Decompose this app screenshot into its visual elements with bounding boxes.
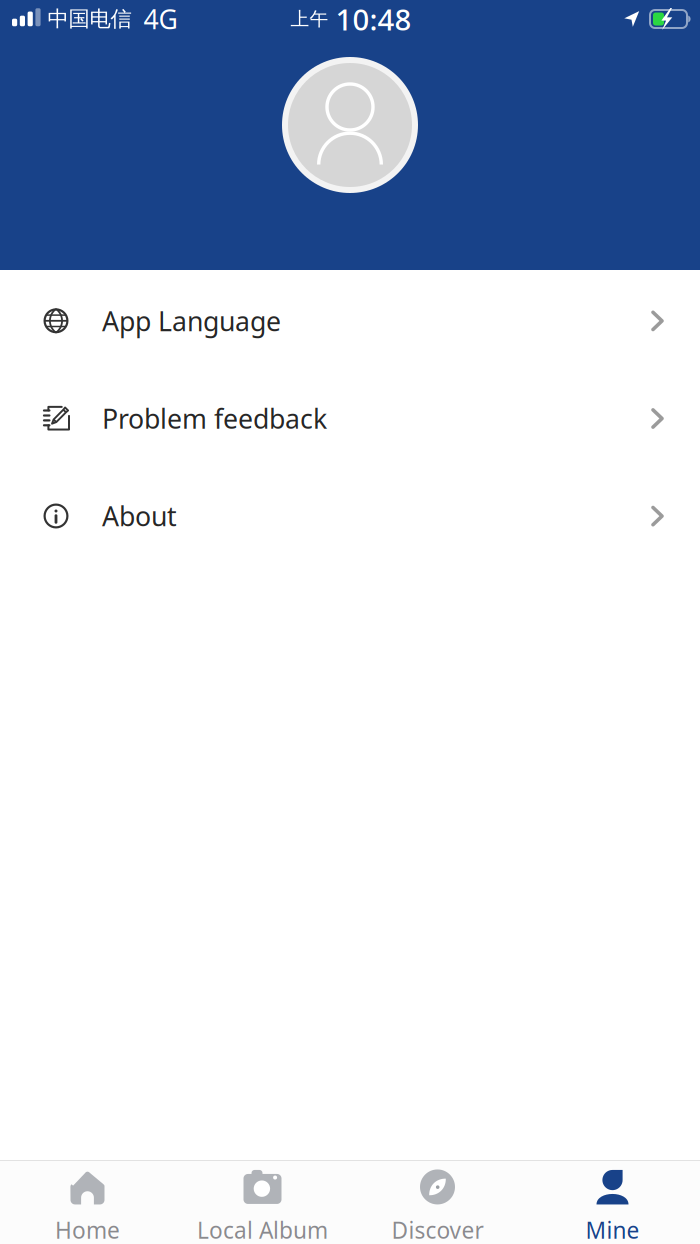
button[interactable]: Discover [350,1157,525,1244]
button[interactable]: Problem feedback [0,370,700,467]
button[interactable]: App Language [0,272,700,370]
button[interactable]: About [0,467,700,565]
staticText: Mine [585,1215,639,1244]
staticText: App Language [102,303,281,338]
button[interactable]: Profile photo [282,38,418,193]
staticText: Problem feedback [102,401,327,436]
staticText: Discover [391,1215,483,1244]
button[interactable]: Local Album [175,1157,350,1244]
staticText: 10:48 [335,0,411,38]
staticText: 中国电信 [48,6,132,32]
staticText: 4G [144,1,178,37]
staticText: 上午 [290,7,328,30]
staticText: Home [55,1215,120,1244]
button[interactable]: Mine [525,1157,700,1244]
staticText: Local Album [197,1215,328,1244]
button[interactable]: Home [0,1157,175,1244]
staticText: About [102,498,177,534]
